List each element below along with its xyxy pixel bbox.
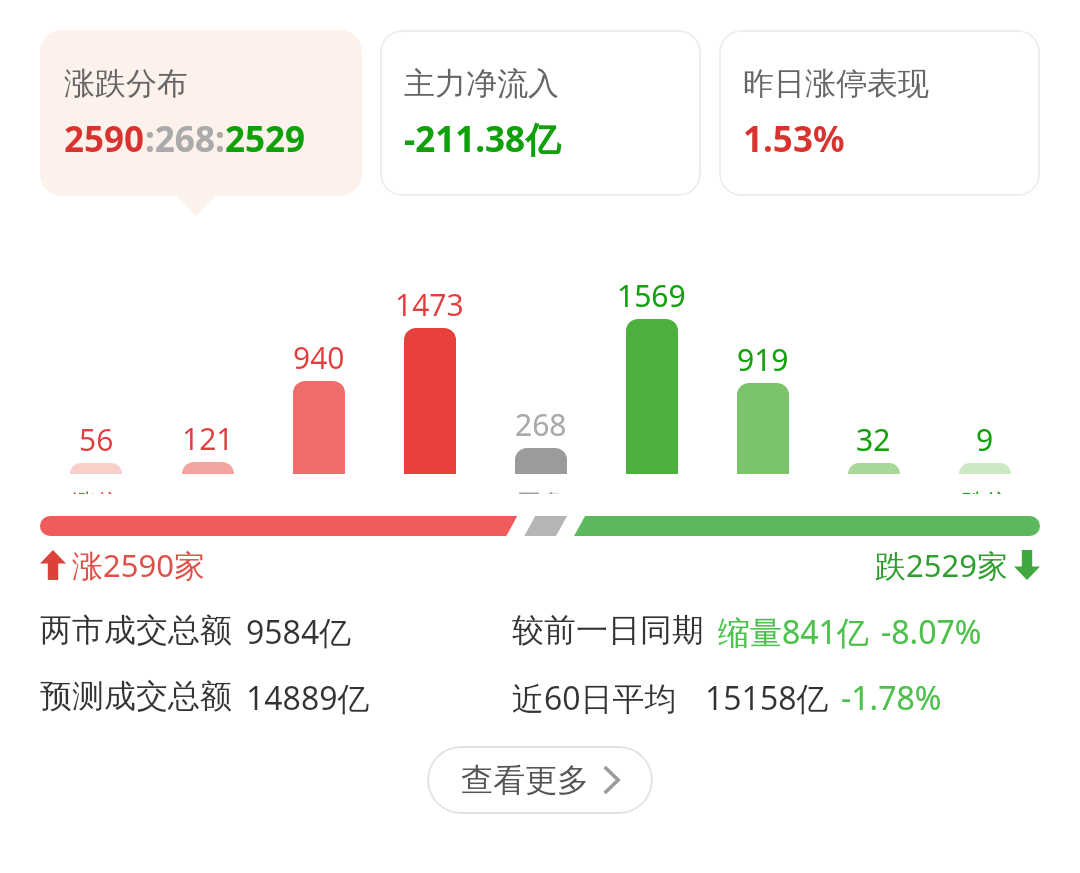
button[interactable]: 查看更多 xyxy=(427,746,653,814)
other: 下跌 xyxy=(1014,550,1040,580)
staticText: 32 xyxy=(856,419,891,460)
staticText: 两市成交总额 xyxy=(40,610,232,650)
staticText: -8.07% xyxy=(881,610,982,654)
staticText: 1.53% xyxy=(743,115,845,163)
staticText: 预测成交总额 xyxy=(40,676,232,716)
staticText: 涨停 xyxy=(72,488,120,494)
staticText: 56 xyxy=(79,419,114,460)
staticText: 较前一日同期 xyxy=(512,610,704,650)
staticText: 9584亿 xyxy=(246,610,352,654)
staticText: 涨跌分布 xyxy=(64,64,188,103)
staticText: -1.78% xyxy=(841,676,942,720)
staticText: 14889亿 xyxy=(246,676,370,720)
staticText: 1569 xyxy=(617,275,686,316)
button[interactable]: 主力净流入 xyxy=(380,30,701,196)
staticText: 缩量841亿 xyxy=(718,610,869,654)
staticText: 940 xyxy=(293,337,345,378)
staticText: 15158亿 xyxy=(705,676,829,720)
staticText: 跌停 xyxy=(961,488,1009,494)
staticText: 121 xyxy=(182,418,234,459)
staticText: -211.38亿 xyxy=(404,115,561,163)
other: 上涨 xyxy=(40,550,66,580)
staticText: 近60日平均 xyxy=(512,676,677,720)
staticText: 昨日涨停表现 xyxy=(743,64,929,103)
staticText: 查看更多 xyxy=(461,760,589,800)
staticText: 9 xyxy=(976,419,994,460)
staticText: 涨2590家 xyxy=(72,544,205,586)
staticText: 2590 xyxy=(64,115,145,163)
staticText: :268: xyxy=(145,115,225,163)
staticText: 主力净流入 xyxy=(404,64,559,103)
staticText: 平盘 xyxy=(517,488,565,494)
staticText: 跌2529家 xyxy=(875,544,1008,586)
button[interactable]: 涨跌分布 xyxy=(40,30,362,196)
button[interactable]: 昨日涨停表现 xyxy=(719,30,1040,196)
staticText: 2529 xyxy=(225,115,306,163)
staticText: 1473 xyxy=(395,284,464,325)
staticText: 919 xyxy=(737,339,789,380)
staticText: 268 xyxy=(515,404,567,445)
